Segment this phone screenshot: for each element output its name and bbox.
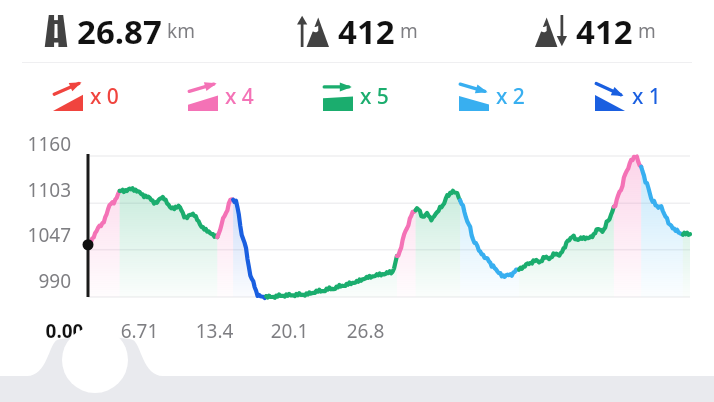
- staticText: 990: [0, 268, 71, 294]
- staticText: km: [167, 18, 195, 44]
- button[interactable]: Grade category 1: [18, 82, 153, 111]
- other: Grade category 3: [323, 83, 353, 111]
- staticText: 412: [338, 9, 395, 54]
- staticText: 1047: [0, 222, 71, 248]
- staticText: x 5: [360, 82, 389, 111]
- staticText: 1103: [0, 177, 71, 203]
- button[interactable]: Distance: [0, 0, 238, 62]
- button[interactable]: Play: [62, 354, 96, 388]
- staticText: m: [400, 18, 418, 44]
- other: Ascent: [297, 15, 329, 47]
- other: Grade category 1: [53, 83, 83, 111]
- other: Descent: [535, 15, 567, 47]
- staticText: x 0: [90, 82, 119, 111]
- button[interactable]: Grade category 2: [153, 82, 288, 111]
- staticText: 412: [576, 9, 633, 54]
- staticText: x 4: [225, 82, 254, 111]
- button[interactable]: Ascent: [238, 0, 476, 62]
- staticText: m: [638, 18, 656, 44]
- button[interactable]: Descent: [476, 0, 714, 62]
- staticText: x 2: [496, 82, 525, 111]
- other: Distance: [44, 15, 68, 47]
- button[interactable]: Grade category 5: [560, 82, 696, 111]
- other: Grade category 2: [188, 83, 218, 111]
- staticText: 26.87: [346, 318, 385, 344]
- staticText: 1160: [0, 131, 71, 157]
- other: Grade category 4: [459, 83, 489, 111]
- staticText: 20.15: [270, 318, 309, 344]
- staticText: 26.87: [77, 9, 162, 54]
- staticText: 0.00: [45, 318, 84, 344]
- staticText: x 1: [632, 82, 661, 111]
- other: Grade category 5: [595, 83, 625, 111]
- button[interactable]: Grade category 4: [424, 82, 560, 111]
- button[interactable]: Grade category 3: [288, 82, 424, 111]
- staticText: 6.71: [120, 318, 159, 344]
- staticText: 13.43: [195, 318, 234, 344]
